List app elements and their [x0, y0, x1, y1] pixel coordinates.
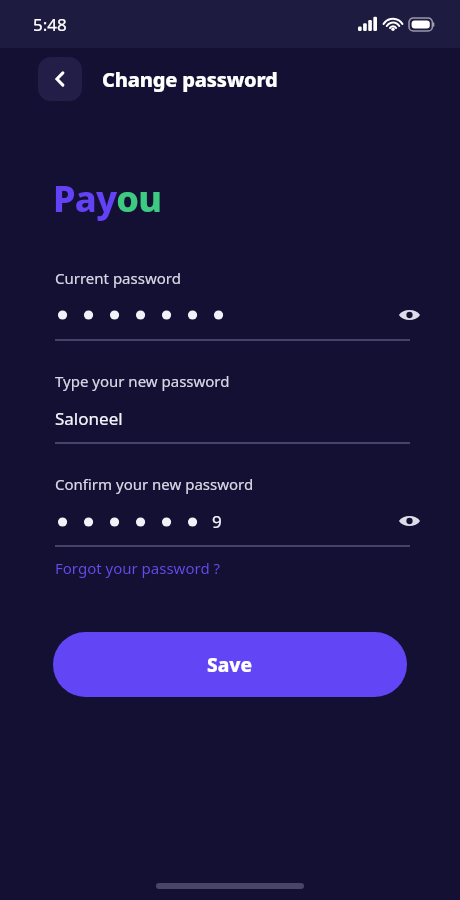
button[interactable]: Show password — [394, 506, 424, 536]
button[interactable]: Save — [53, 632, 407, 697]
staticText: Type your new password — [55, 371, 230, 391]
staticText: Forgot your password ? — [55, 558, 221, 578]
button[interactable]: Show password — [394, 300, 424, 330]
button[interactable]: Back — [38, 57, 82, 101]
staticText: Current password — [55, 268, 181, 288]
staticText: 5:48 — [33, 13, 67, 36]
staticText: Saloneel — [55, 407, 123, 430]
staticText: Save — [207, 652, 253, 678]
button[interactable]: Forgot your password ? — [55, 556, 221, 580]
staticText: 9 — [212, 510, 222, 533]
staticText: Change password — [102, 66, 278, 93]
staticText: Payou — [53, 174, 162, 223]
staticText: Confirm your new password — [55, 474, 254, 494]
